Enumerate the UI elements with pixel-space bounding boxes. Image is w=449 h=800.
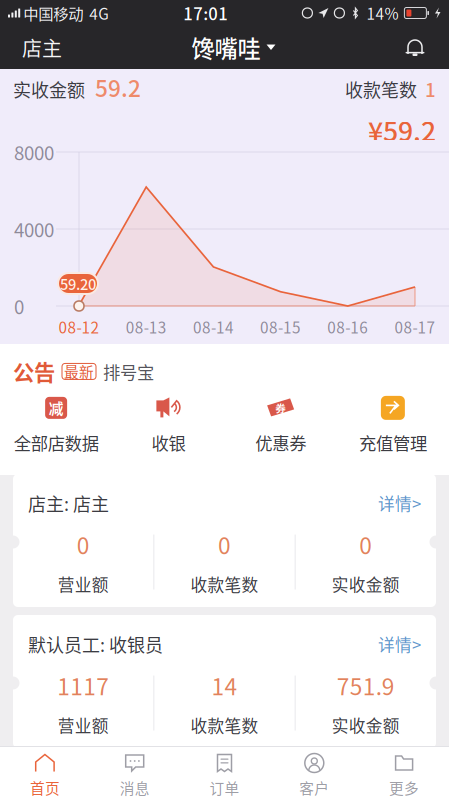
button[interactable]: 首页 <box>0 747 90 800</box>
staticText: 营业额 <box>58 713 109 737</box>
staticText: 默认员工: 收银员 <box>28 631 163 657</box>
staticText: 中国移动 <box>20 2 86 24</box>
staticText: 充值管理 <box>359 430 427 455</box>
staticText: 4000 <box>14 215 54 242</box>
staticText: 59.20 <box>60 273 96 294</box>
staticText: 0 <box>14 292 24 319</box>
button[interactable]: 充值管理 <box>337 395 449 455</box>
staticText: 1117 <box>57 669 109 702</box>
staticText: 最新 <box>64 361 94 382</box>
staticText: 消息 <box>120 777 150 798</box>
button[interactable]: 店主: 店主 <box>0 474 449 607</box>
staticText: 4G <box>86 2 109 24</box>
staticText: 详情> <box>378 491 421 515</box>
staticText: 实收金额 <box>332 713 400 737</box>
staticText: 排号宝 <box>103 359 154 384</box>
staticText: 馋嘴哇 <box>191 31 260 64</box>
button[interactable]: 客户 <box>269 747 359 800</box>
staticText: 更多 <box>389 777 419 798</box>
staticText: 收款笔数 <box>190 713 258 737</box>
staticText: 减 <box>49 397 64 418</box>
button[interactable]: 收银 <box>112 395 224 455</box>
staticText: 公告 <box>13 356 55 387</box>
staticText: 收银 <box>151 430 185 455</box>
button[interactable]: 消息 <box>90 747 180 800</box>
staticText: 实收金额 <box>13 76 85 102</box>
staticText: ¥59.2 <box>368 111 436 149</box>
staticText: 8000 <box>14 138 54 165</box>
staticText: 客户 <box>299 777 329 798</box>
button[interactable]: 订单 <box>180 747 269 800</box>
staticText: 08-14 <box>193 316 234 338</box>
staticText: 0 <box>218 528 231 561</box>
staticText: 营业额 <box>58 572 109 596</box>
staticText: 详情> <box>378 632 421 656</box>
staticText: 订单 <box>209 777 239 798</box>
staticText: 实收金额 <box>332 572 400 596</box>
button[interactable]: 券 <box>224 395 337 455</box>
staticText: 0 <box>359 528 372 561</box>
staticText: 0 <box>77 528 90 561</box>
button[interactable]: 店主 <box>18 27 66 68</box>
staticText: 59.2 <box>85 71 141 104</box>
staticText: 14% <box>366 2 398 24</box>
staticText: 17:01 <box>183 1 228 25</box>
staticText: 优惠券 <box>255 430 306 455</box>
staticText: 1 <box>417 75 436 102</box>
staticText: 08-17 <box>394 316 435 338</box>
staticText: 全部店数据 <box>14 430 99 455</box>
staticText: 券 <box>275 400 286 416</box>
staticText: 14 <box>211 669 237 702</box>
staticText: 收款笔数 <box>190 572 258 596</box>
staticText: 08-15 <box>260 316 301 338</box>
staticText: 店主 <box>22 33 62 62</box>
staticText: 08-12 <box>58 316 99 338</box>
staticText: 751.9 <box>337 669 395 702</box>
staticText: 08-13 <box>126 316 167 338</box>
staticText: 收款笔数 <box>345 76 417 102</box>
button[interactable]: 通知 <box>401 33 429 61</box>
button[interactable]: 更多 <box>359 747 449 800</box>
button[interactable]: 默认员工: 收银员 <box>0 615 449 748</box>
button[interactable]: 减 <box>0 395 112 455</box>
staticText: 店主: 店主 <box>28 490 109 516</box>
staticText: 08-16 <box>327 316 368 338</box>
staticText: 首页 <box>30 777 60 798</box>
button[interactable]: 馋嘴哇 <box>191 25 275 70</box>
